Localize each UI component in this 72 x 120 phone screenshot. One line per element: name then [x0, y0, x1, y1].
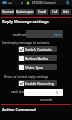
staticText: Slider 3pm — [25, 65, 44, 70]
button[interactable]: Call — [50, 9, 59, 15]
staticText: EPSON Connect — [32, 1, 56, 5]
button[interactable]: Autoresponder — [16, 9, 34, 15]
staticText: each (sec) — [11, 90, 26, 94]
staticText: seconds — [40, 98, 53, 102]
staticText: Reply Message settings — [2, 19, 49, 24]
staticText: 5 — [56, 90, 59, 95]
button[interactable]: Save — [26, 30, 63, 38]
button[interactable]: Adv — [61, 9, 71, 15]
other: Sync — [2, 0, 7, 5]
staticText: Call — [52, 10, 58, 14]
staticText: Active Command — [2, 107, 36, 112]
button[interactable]: Enable Recurring — [18, 80, 57, 86]
staticText: Save — [54, 32, 62, 37]
staticText: Autoresponder — [16, 10, 34, 14]
staticText: Adv — [63, 10, 69, 14]
button[interactable]: Slider 3pm — [18, 64, 57, 70]
staticText: Button/Autho — [25, 56, 49, 61]
staticText: method — [13, 32, 26, 37]
staticText: Recur or to text reply settings — [4, 75, 49, 79]
button[interactable]: Email — [36, 9, 48, 15]
other: Bluetooth — [65, 0, 70, 5]
button[interactable]: 5 — [24, 89, 63, 96]
button[interactable]: Switch Contacts — [18, 46, 57, 52]
staticText: Email — [38, 10, 47, 14]
button[interactable]: Button/Autho — [18, 55, 57, 61]
staticText: Enable Recurring — [25, 81, 54, 86]
button[interactable]: General — [1, 9, 14, 15]
staticText: General — [2, 10, 14, 14]
staticText: Send reply message to contacts — [2, 41, 50, 45]
staticText: Switch Contacts — [25, 47, 52, 52]
